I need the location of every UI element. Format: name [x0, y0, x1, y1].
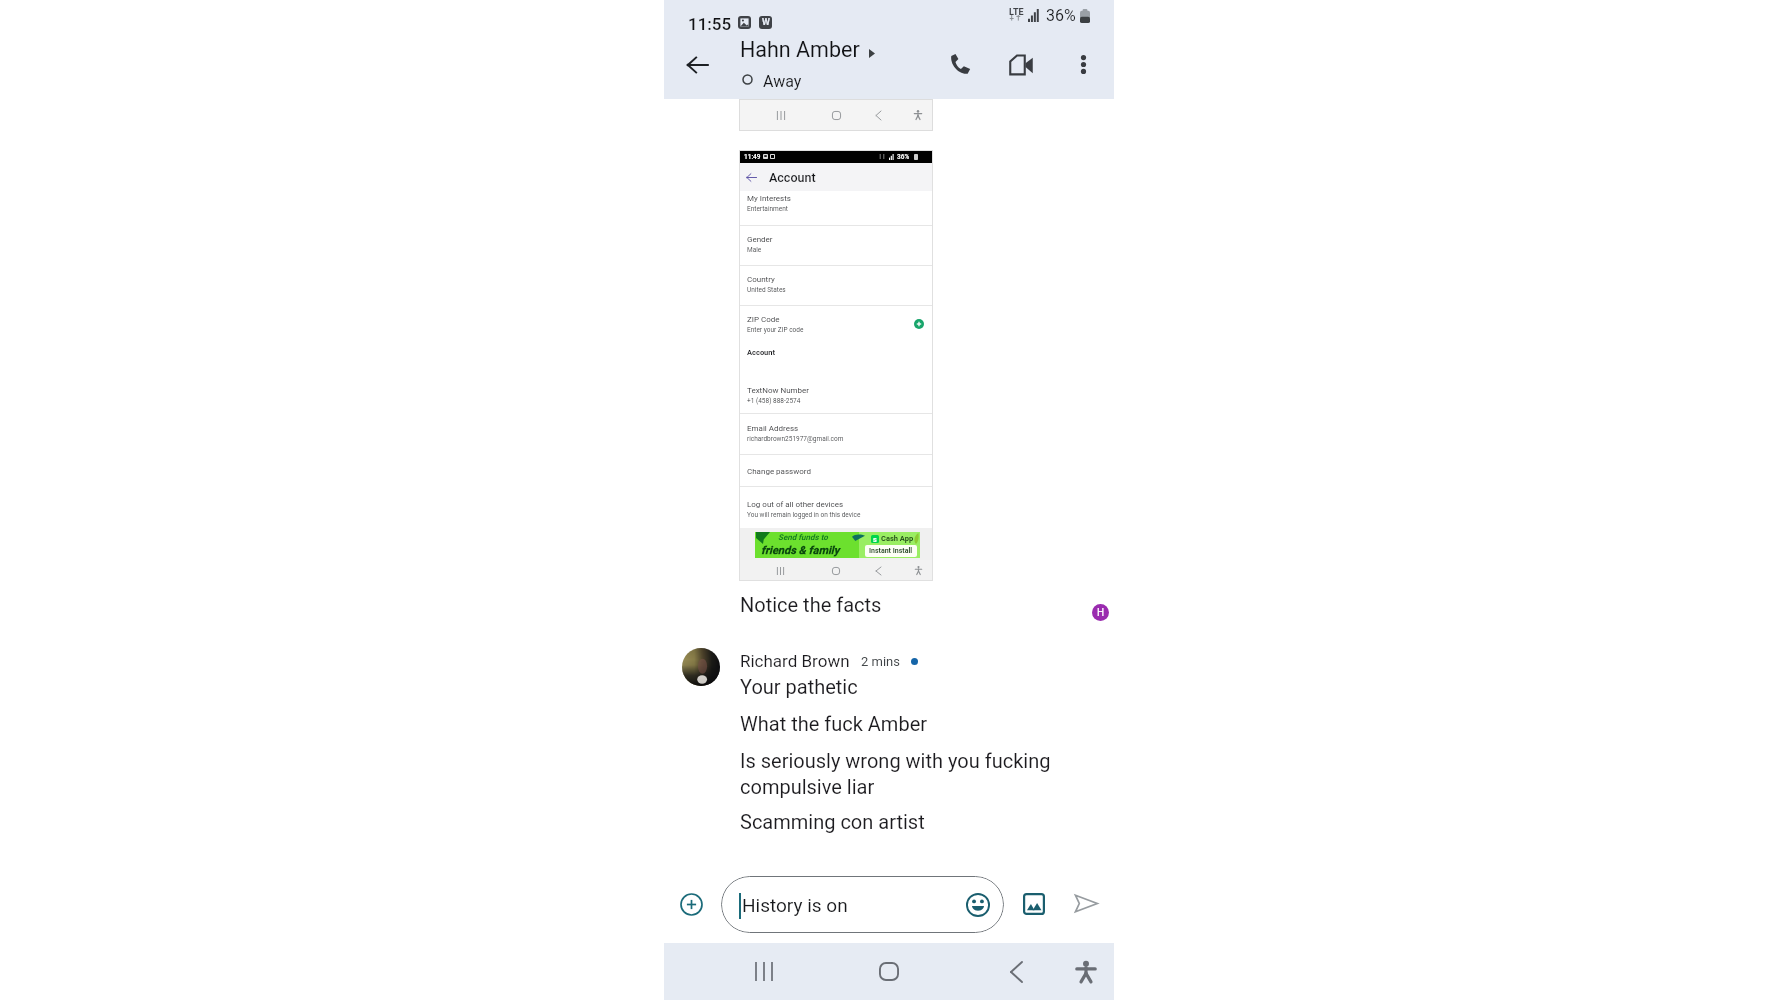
- button[interactable]: Previous screenshot attachment: [739, 99, 933, 131]
- staticText: History is on: [742, 894, 848, 916]
- staticText: 36%: [897, 153, 910, 161]
- staticText: Away: [763, 72, 802, 91]
- staticText: Enter your ZIP code: [747, 326, 804, 334]
- button[interactable]: Scamming con artist: [740, 810, 925, 833]
- staticText: Change password: [747, 467, 811, 476]
- staticText: Richard Brown: [740, 651, 850, 671]
- staticText: Account: [747, 348, 776, 357]
- staticText: 11:55: [688, 14, 732, 34]
- staticText: Entertainment: [747, 205, 788, 213]
- staticText: 2 mins: [861, 654, 900, 669]
- button[interactable]: Notice the facts: [740, 593, 882, 616]
- button[interactable]: Is seriously wrong with you fucking comp…: [740, 749, 1058, 799]
- button[interactable]: Hahn Amber: [736, 34, 936, 94]
- button[interactable]: Home: [864, 943, 914, 1000]
- staticText: Gender: [747, 235, 773, 244]
- staticText: H: [1097, 607, 1105, 619]
- button[interactable]: Add attachment: [669, 882, 713, 926]
- staticText: W: [762, 17, 770, 28]
- staticText: friends & family: [761, 544, 840, 557]
- button[interactable]: History is on: [721, 876, 1004, 933]
- staticText: 36%: [1046, 6, 1076, 25]
- staticText: Email Address: [747, 424, 799, 433]
- button[interactable]: Emoji: [960, 887, 996, 923]
- staticText: Hahn Amber: [740, 37, 860, 62]
- staticText: ZIP Code: [747, 315, 780, 324]
- staticText: Male: [747, 246, 762, 254]
- button[interactable]: Insert image: [1012, 882, 1056, 926]
- staticText: Instant Install: [869, 547, 913, 555]
- staticText: Log out of all other devices: [747, 500, 844, 509]
- staticText: Country: [747, 275, 775, 284]
- button[interactable]: Call: [938, 42, 982, 86]
- button[interactable]: More options: [1061, 42, 1105, 86]
- button[interactable]: Accessibility: [1061, 943, 1111, 1000]
- button[interactable]: What the fuck Amber: [740, 712, 928, 735]
- button[interactable]: Send: [1064, 881, 1108, 925]
- staticText: Cash App: [881, 534, 914, 543]
- button[interactable]: Video call: [998, 42, 1042, 86]
- staticText: S: [873, 536, 877, 543]
- staticText: +1 (458) 888-2574: [747, 397, 801, 405]
- staticText: richardbrown251977@gmail.com: [747, 435, 844, 443]
- button[interactable]: Back: [673, 41, 721, 89]
- staticText: My Interests: [747, 194, 791, 203]
- button[interactable]: Screenshot attachment: [739, 150, 933, 581]
- staticText: United States: [747, 286, 786, 294]
- staticText: Send funds to: [778, 533, 828, 542]
- staticText: LTE: [1009, 7, 1024, 18]
- button[interactable]: Your pathetic: [740, 675, 858, 698]
- button[interactable]: Back: [991, 943, 1041, 1000]
- staticText: You will remain logged in on this device: [747, 511, 861, 519]
- button[interactable]: Recents: [739, 943, 789, 1000]
- staticText: Account: [769, 170, 816, 185]
- staticText: TextNow Number: [747, 386, 810, 395]
- staticText: 11:49: [744, 153, 761, 161]
